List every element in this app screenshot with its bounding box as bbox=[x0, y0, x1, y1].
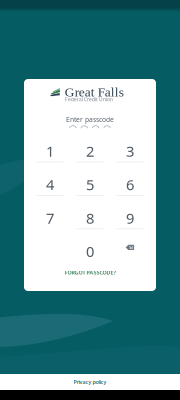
button[interactable]: Delete bbox=[110, 228, 150, 262]
staticText: 2 bbox=[86, 141, 94, 161]
staticText: 8 bbox=[86, 208, 94, 228]
button[interactable]: Privacy policy bbox=[0, 374, 180, 390]
button[interactable]: FORGOT PASSCODE? bbox=[34, 264, 146, 280]
staticText: Enter passcode bbox=[66, 115, 114, 124]
staticText: Privacy policy bbox=[73, 378, 106, 386]
button[interactable]: 2 bbox=[70, 128, 110, 162]
staticText: 0 bbox=[86, 242, 94, 261]
button[interactable]: 6 bbox=[110, 162, 150, 195]
button[interactable]: 1 bbox=[30, 128, 70, 162]
button[interactable]: 5 bbox=[70, 162, 110, 195]
staticText: Federal Credit Union bbox=[65, 96, 113, 103]
button[interactable]: 9 bbox=[110, 195, 150, 228]
staticText: 1 bbox=[46, 141, 54, 161]
staticText: 4 bbox=[46, 175, 54, 194]
staticText: 3 bbox=[126, 141, 134, 161]
staticText: 6 bbox=[126, 175, 134, 194]
staticText: 5 bbox=[86, 175, 94, 194]
button[interactable]: 8 bbox=[70, 195, 110, 228]
button[interactable]: 0 bbox=[70, 228, 110, 262]
button[interactable]: 7 bbox=[30, 195, 70, 228]
button[interactable]: 4 bbox=[30, 162, 70, 195]
staticText: FORGOT PASSCODE? bbox=[64, 269, 115, 276]
button[interactable]: 3 bbox=[110, 128, 150, 162]
staticText: Great Falls bbox=[65, 85, 124, 99]
staticText: 7 bbox=[46, 208, 54, 228]
staticText: 9 bbox=[126, 208, 134, 228]
